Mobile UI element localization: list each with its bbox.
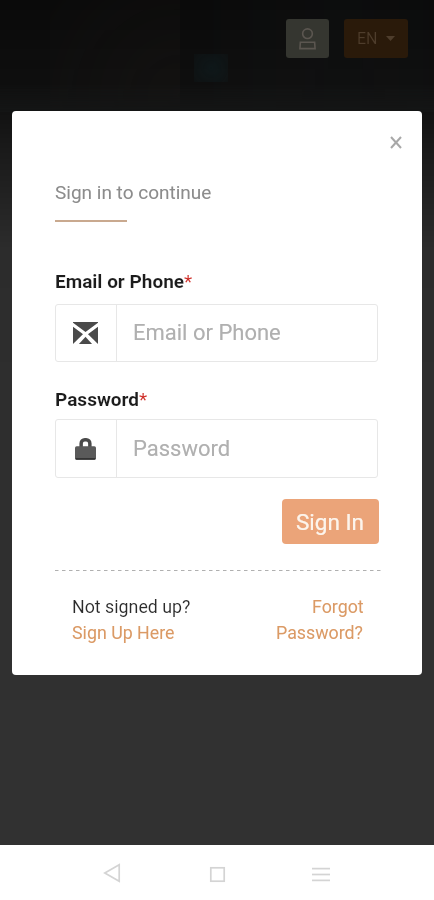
staticText: Sign In xyxy=(296,509,365,535)
button[interactable]: Back xyxy=(88,849,136,897)
staticText: Email or Phone* xyxy=(55,270,193,292)
button[interactable]: Sign Up Here xyxy=(72,622,175,643)
button[interactable]: Email or Phone xyxy=(117,304,378,362)
button[interactable]: Password xyxy=(117,419,378,478)
staticText: Sign Up Here xyxy=(72,622,175,643)
button[interactable]: Close xyxy=(382,128,410,156)
button[interactable]: Language EN xyxy=(344,19,408,58)
staticText: Sign in to continue xyxy=(55,181,212,203)
staticText: Password xyxy=(133,436,231,462)
staticText: Password? xyxy=(276,622,364,643)
button[interactable]: Recent apps xyxy=(297,850,345,898)
staticText: EN xyxy=(357,29,378,48)
button[interactable]: Forgot xyxy=(224,596,364,643)
button[interactable]: Account xyxy=(286,19,329,58)
staticText: Email or Phone xyxy=(133,320,281,346)
button[interactable]: Home xyxy=(193,850,241,898)
staticText: Password* xyxy=(55,388,148,410)
staticText: Forgot xyxy=(312,596,364,617)
button[interactable]: Sign In xyxy=(282,499,379,544)
staticText: Not signed up? xyxy=(72,596,191,617)
